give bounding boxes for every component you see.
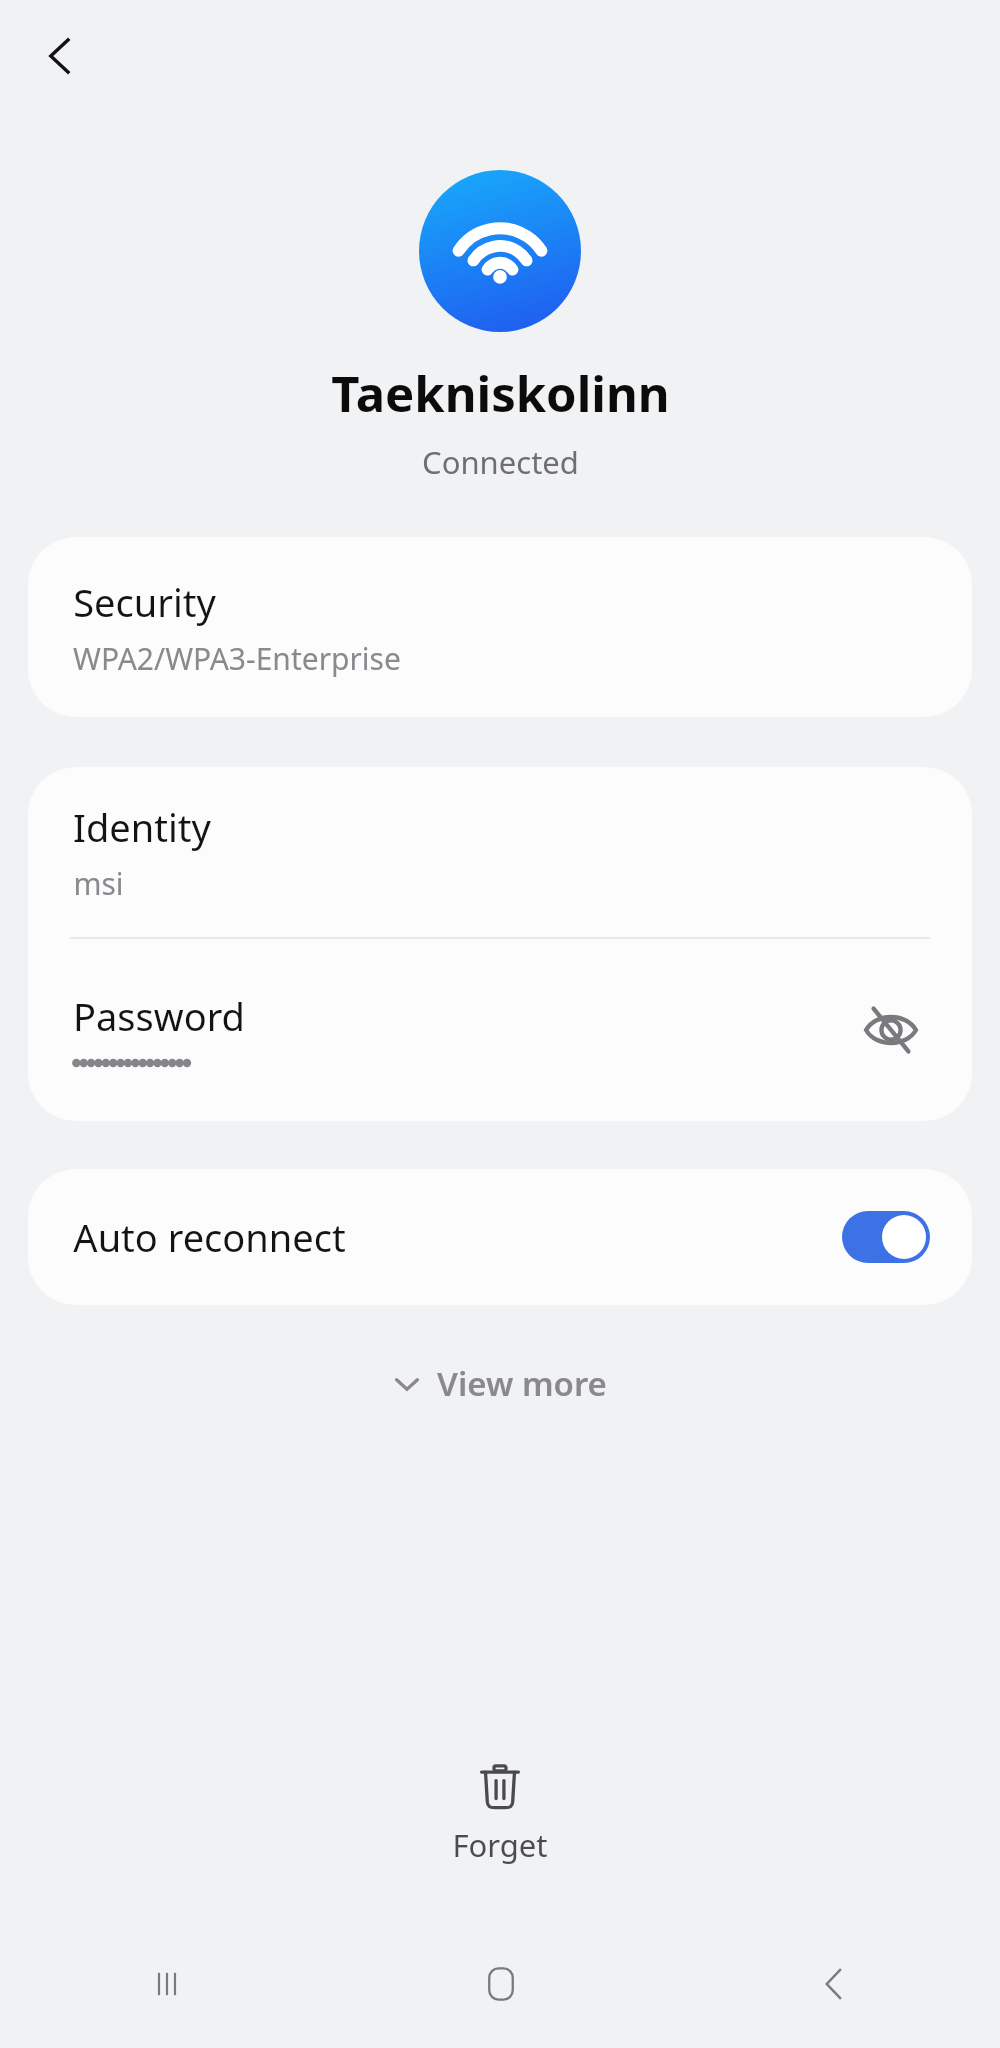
- staticText: Forget: [452, 1824, 548, 1866]
- staticText: Security: [73, 576, 216, 628]
- staticText: msi: [73, 863, 124, 904]
- staticText: Identity: [73, 801, 211, 853]
- button[interactable]: Recent apps: [0, 1936, 334, 2032]
- staticText: Taekniskolinn: [331, 360, 670, 427]
- staticText: View more: [437, 1361, 607, 1406]
- staticText: WPA2/WPA3-Enterprise: [73, 638, 401, 679]
- staticText: Connected: [422, 441, 579, 483]
- button[interactable]: View more: [370, 1349, 631, 1418]
- button[interactable]: Back: [667, 1936, 1000, 2032]
- button[interactable]: Home: [334, 1936, 667, 2032]
- button[interactable]: Auto reconnect: [28, 1169, 972, 1305]
- button[interactable]: Back: [24, 20, 96, 92]
- button[interactable]: Forget: [412, 1750, 588, 1880]
- button[interactable]: Password: [28, 939, 972, 1121]
- button[interactable]: Identity: [28, 767, 972, 937]
- staticText: Password: [73, 990, 245, 1042]
- staticText: Auto reconnect: [73, 1211, 346, 1263]
- button[interactable]: Auto reconnect toggle: [842, 1211, 930, 1263]
- button[interactable]: Security: [28, 537, 972, 717]
- button[interactable]: Show password: [855, 994, 927, 1066]
